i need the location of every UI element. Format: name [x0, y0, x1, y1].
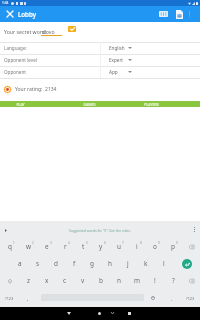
staticText: q: [8, 242, 12, 251]
staticText: b: [99, 276, 103, 285]
button[interactable]: z: [19, 272, 38, 289]
staticText: 4: [68, 241, 70, 245]
button[interactable]: c: [56, 272, 74, 289]
staticText: s: [36, 259, 40, 268]
staticText: 7: [122, 241, 124, 245]
staticText: 2: [32, 241, 34, 245]
staticText: App: [109, 69, 118, 75]
button[interactable]: Back: [61, 307, 77, 320]
button[interactable]: Language:: [0, 42, 200, 54]
button[interactable]: j: [119, 255, 137, 272]
staticText: n: [117, 276, 121, 285]
staticText: 9: [158, 241, 160, 245]
button[interactable]: ?123: [180, 289, 200, 307]
staticText: 1: [13, 241, 15, 245]
button[interactable]: n: [110, 272, 128, 289]
staticText: e: [45, 242, 49, 251]
button[interactable]: k: [137, 255, 155, 272]
staticText: 1:34: [2, 1, 9, 5]
button[interactable]: Confirm secret word: [68, 26, 76, 32]
button[interactable]: Close: [2, 6, 18, 22]
button[interactable]: Backspace: [182, 272, 200, 289]
button[interactable]: p: [164, 238, 182, 255]
button[interactable]: ,: [19, 289, 37, 307]
button[interactable]: More options: [190, 226, 198, 234]
button[interactable]: PLAYERS: [128, 101, 174, 107]
staticText: GAMES: [83, 102, 96, 107]
button[interactable]: h: [101, 255, 119, 272]
button[interactable]: y: [92, 238, 110, 255]
button[interactable]: Rules: [171, 6, 187, 22]
staticText: 6: [104, 241, 106, 245]
button[interactable]: b: [92, 272, 110, 289]
button[interactable]: Home: [91, 307, 107, 320]
staticText: w: [26, 242, 32, 251]
staticText: k: [144, 259, 148, 268]
button[interactable]: Expand toolbar: [1, 225, 11, 235]
staticText: Your rating: 2134: [15, 86, 57, 93]
staticText: .: [171, 295, 173, 302]
button[interactable]: r: [56, 238, 74, 255]
button[interactable]: w: [19, 238, 38, 255]
staticText: Language:: [4, 45, 27, 51]
staticText: y: [99, 242, 103, 251]
button[interactable]: Recent apps: [121, 307, 137, 320]
button[interactable]: m: [128, 272, 146, 289]
button[interactable]: d: [47, 255, 65, 272]
staticText: ,: [27, 295, 29, 302]
staticText: 3: [50, 241, 52, 245]
staticText: Opponent: [4, 69, 26, 75]
staticText: v: [81, 276, 85, 285]
staticText: !: [154, 276, 156, 285]
staticText: Your secret word:: [4, 28, 47, 35]
button[interactable]: ?: [164, 272, 182, 289]
staticText: Suggested words for "S". See the rules.: [69, 228, 131, 233]
staticText: z: [27, 276, 31, 285]
button[interactable]: Emoji: [145, 289, 160, 307]
staticText: Lobby: [18, 10, 36, 18]
staticText: j: [127, 259, 129, 268]
button[interactable]: q: [0, 238, 19, 255]
button[interactable]: GAMES: [62, 101, 117, 107]
button[interactable]: f: [65, 255, 83, 272]
button[interactable]: !: [146, 272, 164, 289]
staticText: Expert: [109, 57, 123, 63]
staticText: slovo: [42, 28, 55, 35]
staticText: English: [109, 45, 125, 51]
button[interactable]: i: [128, 238, 146, 255]
staticText: PLAY: [16, 102, 25, 107]
button[interactable]: e: [38, 238, 56, 255]
staticText: ?123: [186, 296, 195, 301]
button[interactable]: l: [155, 255, 173, 272]
button[interactable]: a: [10, 255, 29, 272]
button[interactable]: v: [74, 272, 92, 289]
staticText: f: [73, 259, 76, 268]
button[interactable]: g: [83, 255, 101, 272]
button[interactable]: Opponent level: [0, 54, 200, 66]
button[interactable]: x: [38, 272, 56, 289]
button[interactable]: u: [110, 238, 128, 255]
button[interactable]: Letter rack: [155, 6, 171, 22]
button[interactable]: Shift: [0, 272, 19, 289]
button[interactable]: Enter: [173, 255, 200, 272]
staticText: 5: [86, 241, 88, 245]
button[interactable]: s: [29, 255, 47, 272]
staticText: h: [108, 259, 112, 268]
staticText: r: [64, 242, 67, 251]
staticText: ?: [172, 276, 175, 285]
button[interactable]: ?123: [0, 289, 19, 307]
staticText: 0: [176, 241, 178, 245]
button[interactable]: Opponent: [0, 66, 200, 78]
button[interactable]: PLAY: [0, 101, 40, 107]
button[interactable]: Backspace: [182, 238, 200, 255]
staticText: o: [153, 242, 157, 251]
staticText: l: [163, 259, 165, 268]
button[interactable]: o: [146, 238, 164, 255]
staticText: Opponent level: [4, 57, 37, 63]
button[interactable]: t: [74, 238, 92, 255]
staticText: d: [54, 259, 58, 268]
staticText: g: [90, 259, 94, 268]
staticText: a: [18, 259, 22, 268]
